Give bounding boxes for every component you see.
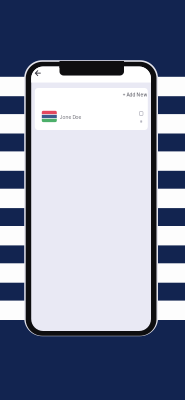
button[interactable]: Delete xyxy=(137,117,145,125)
staticText: Jone Doe xyxy=(59,114,81,120)
staticText: + Add New xyxy=(122,92,147,98)
button[interactable]: Back xyxy=(32,68,43,79)
button[interactable]: + Add New xyxy=(113,91,147,98)
button[interactable]: Edit xyxy=(137,109,145,117)
